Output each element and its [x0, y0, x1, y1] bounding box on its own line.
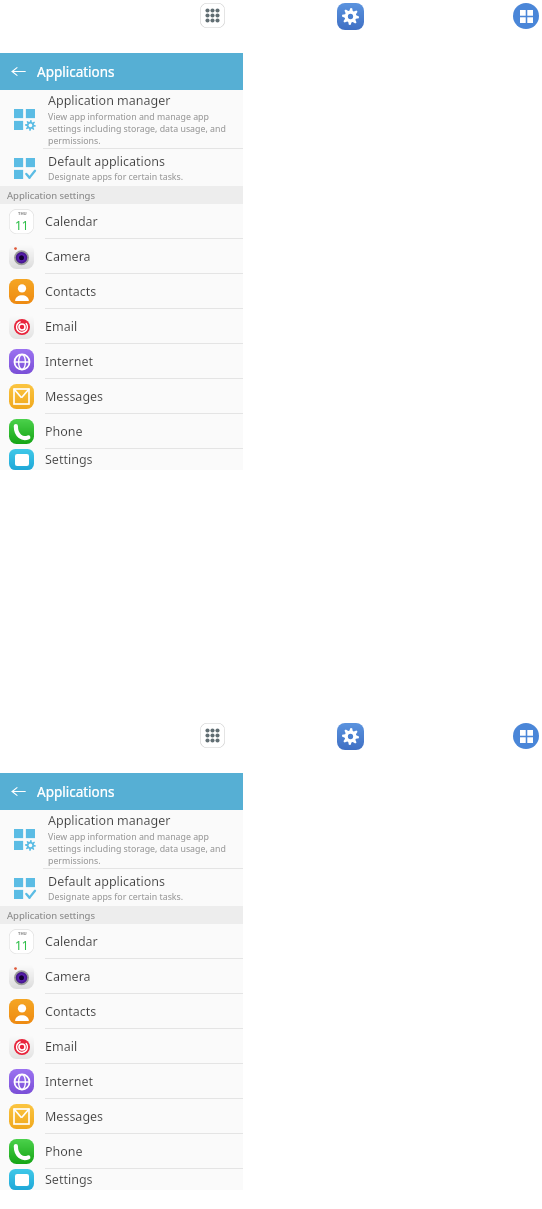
button[interactable]: Contacts: [0, 994, 243, 1028]
staticText: Contacts: [45, 1003, 97, 1020]
button[interactable]: THU: [0, 204, 243, 238]
staticText: Default applications: [48, 153, 166, 170]
staticText: Application manager: [48, 92, 171, 109]
staticText: Internet: [45, 353, 93, 370]
button[interactable]: Applications: [513, 723, 539, 749]
staticText: Camera: [45, 968, 91, 985]
button[interactable]: Apps: [200, 3, 225, 28]
button[interactable]: Messages: [0, 1099, 243, 1133]
staticText: THU: [18, 211, 27, 217]
button[interactable]: THU: [0, 924, 243, 958]
button[interactable]: Phone: [0, 1134, 243, 1168]
button[interactable]: Settings: [337, 723, 364, 750]
staticText: Application settings: [7, 189, 95, 202]
button[interactable]: Application manager: [0, 90, 243, 148]
button[interactable]: Application manager: [0, 810, 243, 868]
staticText: Applications: [37, 63, 115, 81]
staticText: Designate apps for certain tasks.: [48, 171, 184, 183]
staticText: Email: [45, 318, 78, 335]
staticText: Calendar: [45, 933, 98, 950]
button[interactable]: Internet: [0, 1064, 243, 1098]
staticText: View app information and manage app sett…: [48, 831, 235, 867]
staticText: Settings: [45, 451, 93, 468]
button[interactable]: Email: [0, 1029, 243, 1063]
staticText: Application settings: [7, 909, 95, 922]
button[interactable]: Default applications: [0, 149, 243, 186]
staticText: Default applications: [48, 873, 166, 890]
staticText: THU: [18, 931, 27, 937]
button[interactable]: Camera: [0, 239, 243, 273]
button[interactable]: Default applications: [0, 869, 243, 906]
button[interactable]: Contacts: [0, 274, 243, 308]
button[interactable]: Settings: [0, 1169, 243, 1190]
staticText: Settings: [45, 1171, 93, 1188]
button[interactable]: Back: [0, 53, 243, 90]
staticText: Email: [45, 1038, 78, 1055]
staticText: Contacts: [45, 283, 97, 300]
staticText: Calendar: [45, 213, 98, 230]
staticText: Messages: [45, 388, 104, 405]
button[interactable]: Back: [0, 773, 243, 810]
button[interactable]: Camera: [0, 959, 243, 993]
button[interactable]: Internet: [0, 344, 243, 378]
button[interactable]: Email: [0, 309, 243, 343]
button[interactable]: Settings: [0, 449, 243, 470]
staticText: Internet: [45, 1073, 93, 1090]
staticText: Camera: [45, 248, 91, 265]
staticText: Application manager: [48, 812, 171, 829]
other: Back: [11, 784, 26, 799]
button[interactable]: Settings: [337, 3, 364, 30]
staticText: Messages: [45, 1108, 104, 1125]
button[interactable]: Applications: [513, 3, 539, 29]
staticText: 11: [15, 937, 29, 953]
button[interactable]: Phone: [0, 414, 243, 448]
other: Back: [11, 64, 26, 79]
staticText: Phone: [45, 1143, 83, 1160]
staticText: View app information and manage app sett…: [48, 111, 235, 147]
button[interactable]: Apps: [200, 723, 225, 748]
button[interactable]: Messages: [0, 379, 243, 413]
staticText: Designate apps for certain tasks.: [48, 891, 184, 903]
staticText: Phone: [45, 423, 83, 440]
staticText: Applications: [37, 783, 115, 801]
staticText: 11: [15, 217, 29, 233]
